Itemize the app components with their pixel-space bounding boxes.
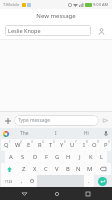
staticText: Hi [84,130,89,137]
button[interactable]: U [67,139,78,151]
staticText: New message [36,12,76,20]
button[interactable]: N [73,163,84,175]
button[interactable]: . [84,175,94,187]
staticText: Y [60,141,64,149]
staticText: 1 [9,140,11,144]
staticText: I [55,130,57,137]
button[interactable]: P [100,139,111,151]
staticText: O [92,141,97,149]
staticText: B [66,165,70,173]
staticText: W [15,141,21,149]
button[interactable]: Backspace [95,163,111,175]
staticText: . [88,178,90,185]
button[interactable]: L [96,151,107,163]
button[interactable]: W [12,139,23,151]
button[interactable]: Add attachment [2,115,13,126]
staticText: The [20,130,29,137]
staticText: 4 [42,140,44,144]
staticText: 9:00 AM [93,2,109,7]
button[interactable]: Emoji [27,175,37,187]
staticText: N [76,165,81,173]
button[interactable]: Z [18,163,29,175]
button[interactable]: E [23,139,34,151]
staticText: P [104,141,108,149]
button[interactable]: Home [50,187,63,200]
button[interactable]: D [29,151,41,163]
button[interactable]: S [17,151,29,163]
staticText: I [83,141,85,149]
button[interactable]: X [29,163,40,175]
button[interactable]: M [84,163,95,175]
staticText: T-Mobile [3,2,20,7]
staticText: R [38,141,42,149]
staticText: H [66,153,71,161]
staticText: D [33,153,38,161]
staticText: L [100,153,104,161]
button[interactable]: The [9,128,40,139]
button[interactable]: F [41,151,52,163]
staticText: C [44,165,48,173]
staticText: 3 [31,140,33,144]
button[interactable]: I [78,139,89,151]
staticText: 0 [108,140,110,144]
button[interactable]: Enter [98,177,107,186]
button[interactable]: Choose contact [95,25,107,37]
button[interactable]: Recents [81,187,94,200]
button[interactable]: V [51,163,62,175]
button[interactable]: R [34,139,45,151]
button[interactable]: Send [100,115,110,125]
staticText: 7 [75,140,77,144]
button[interactable]: Y [56,139,67,151]
staticText: Type message [18,117,51,124]
button[interactable]: J [74,151,85,163]
button[interactable]: T [45,139,56,151]
staticText: , [21,178,23,185]
staticText: Leslie Knope [8,27,41,34]
staticText: 9 [97,140,99,144]
button[interactable]: H [63,151,74,163]
staticText: Q [4,141,9,149]
staticText: G [55,153,60,161]
staticText: 8 [86,140,88,144]
staticText: 2 [20,140,22,144]
button[interactable]: G [52,151,63,163]
button[interactable]: Shift [1,163,18,175]
button[interactable]: Voice input [102,130,109,137]
button[interactable]: Leslie Knope [5,25,91,36]
button[interactable]: Q [1,139,12,151]
button[interactable]: Hi [71,128,102,139]
staticText: Z [22,165,26,173]
button[interactable]: Back [18,187,31,200]
button[interactable]: K [85,151,96,163]
staticText: F [45,153,49,161]
button[interactable]: Google [3,131,9,137]
button[interactable]: , [17,175,27,187]
button[interactable]: ?123 [1,175,17,187]
staticText: J [79,153,81,161]
staticText: T [49,141,53,149]
button[interactable]: O [89,139,100,151]
button[interactable]: I [40,128,71,139]
staticText: V [55,165,59,173]
staticText: U [70,141,75,149]
button[interactable]: A [5,151,17,163]
staticText: 6 [64,140,66,144]
staticText: S [21,153,25,161]
staticText: E [27,141,31,149]
staticText: ?123 [5,179,13,184]
staticText: 5 [53,140,55,144]
button[interactable]: B [62,163,73,175]
button[interactable]: Type message [14,115,99,126]
button[interactable]: C [40,163,51,175]
staticText: M [87,165,93,173]
staticText: K [89,153,93,161]
staticText: A [9,153,13,161]
staticText: X [33,165,37,173]
